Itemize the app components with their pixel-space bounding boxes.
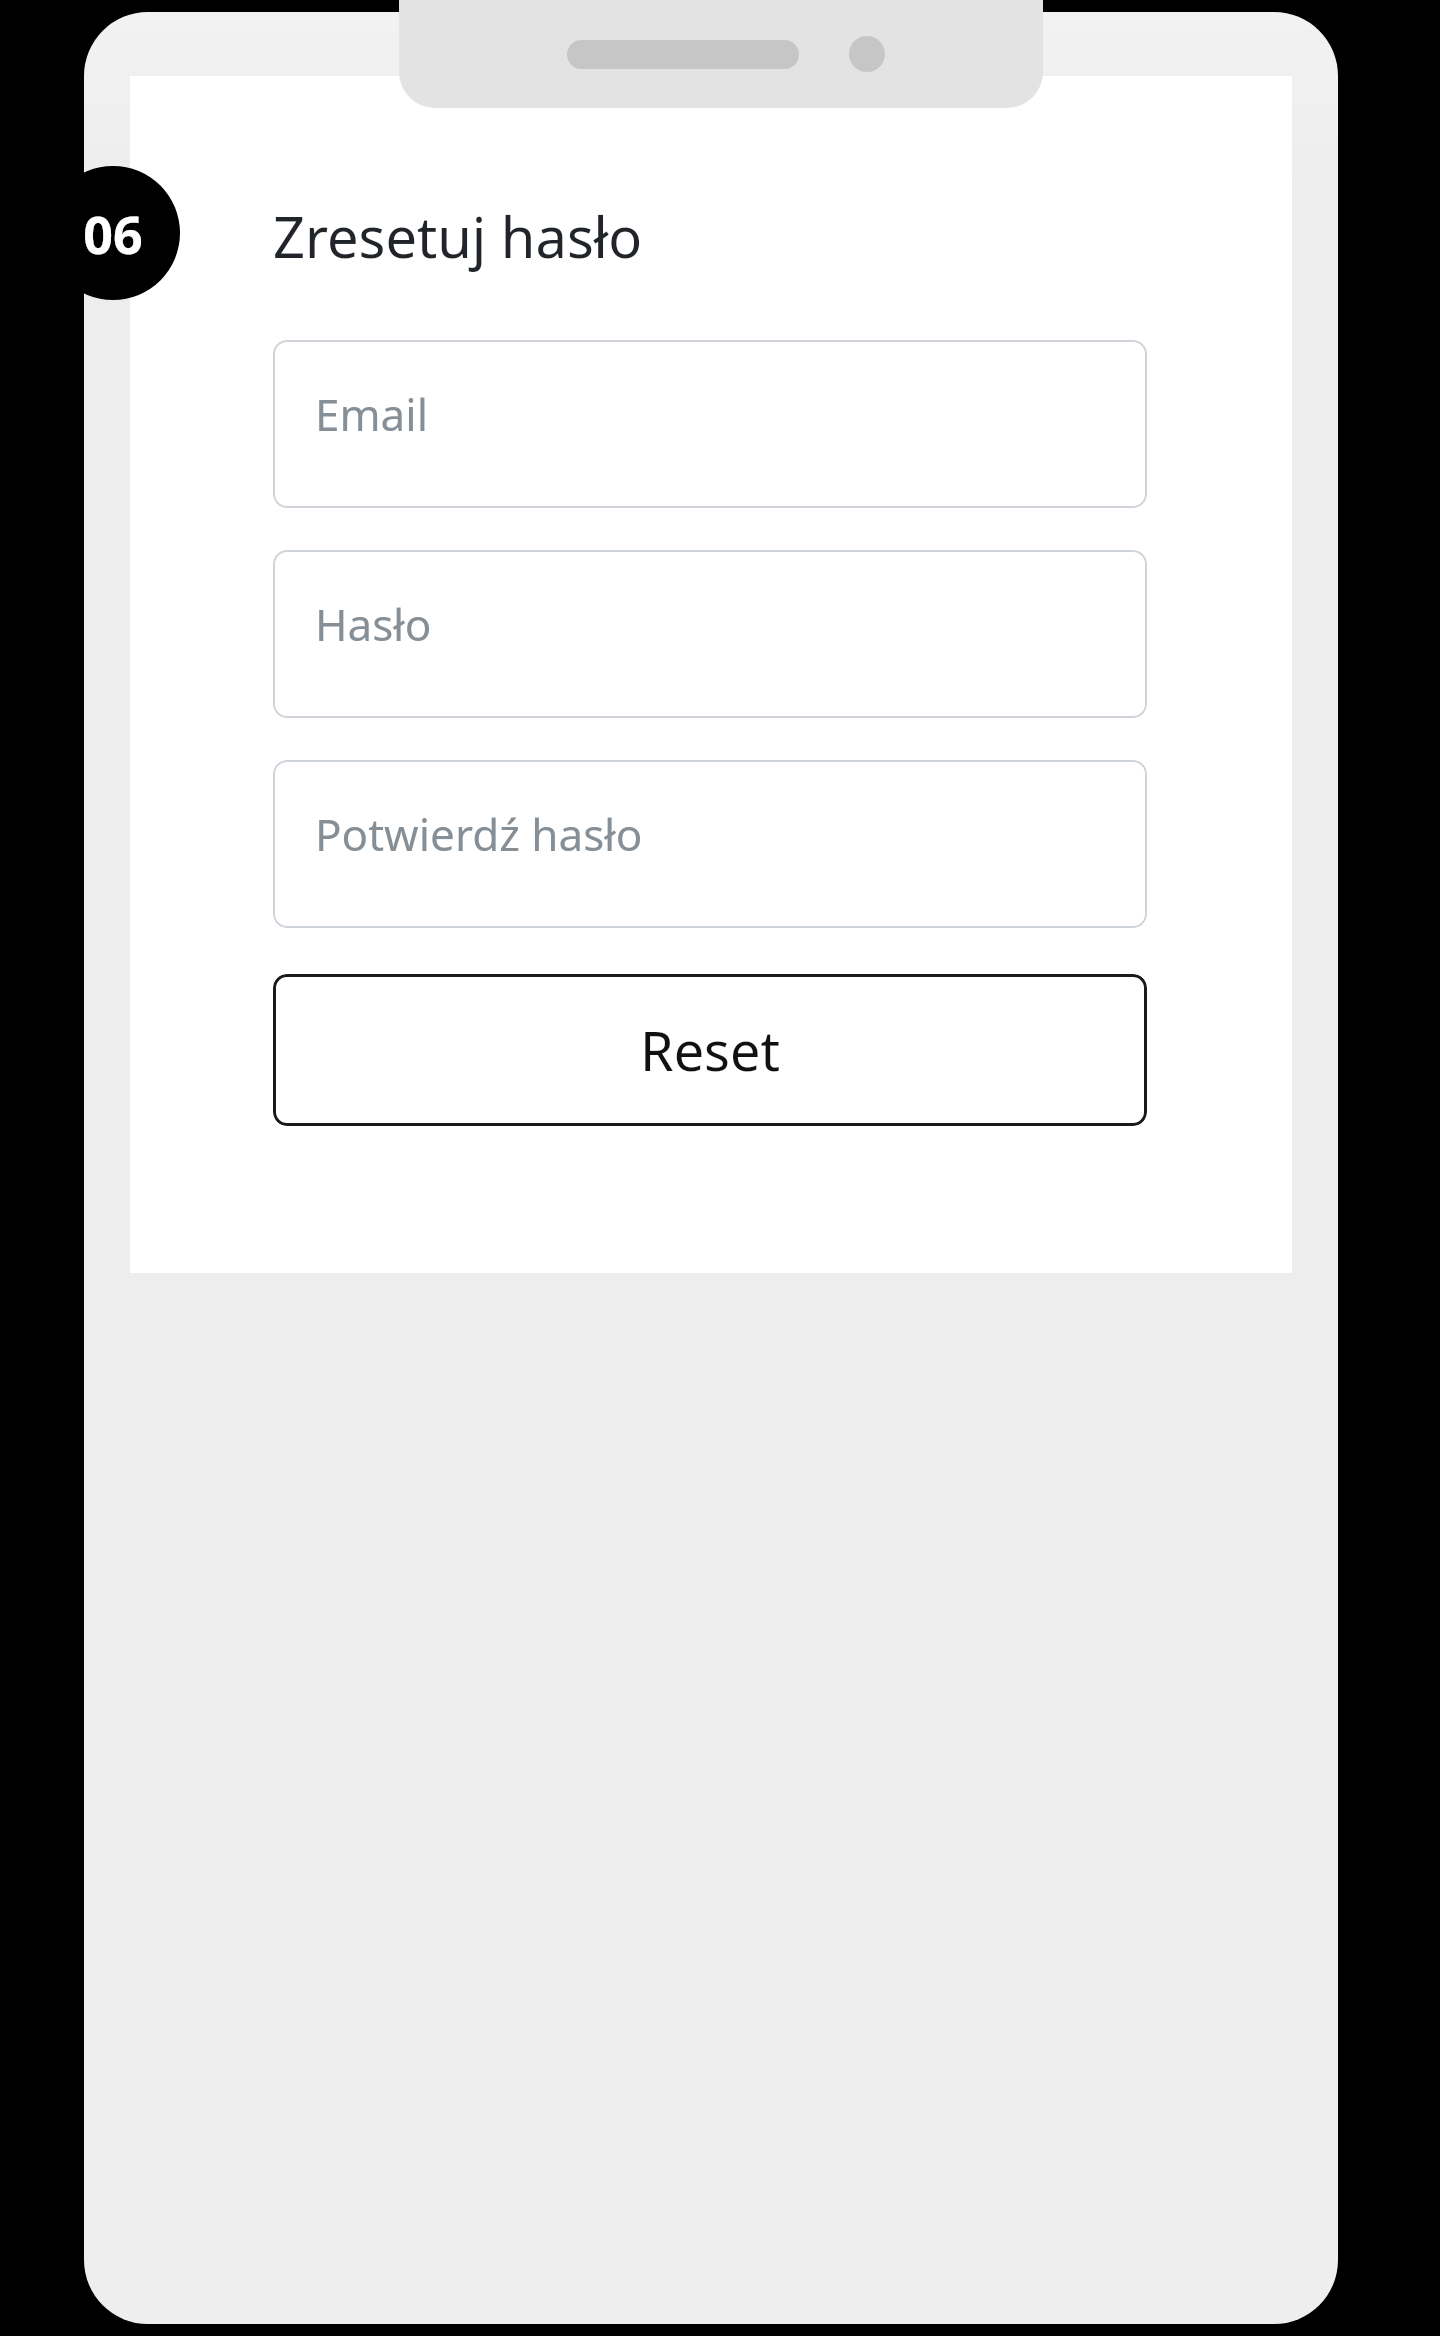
staticText: Hasło — [315, 594, 432, 654]
button[interactable]: Email — [273, 340, 1147, 508]
other: Step 06 — [46, 166, 180, 300]
staticText: Zresetuj hasło — [273, 198, 643, 274]
button[interactable]: Reset — [273, 974, 1147, 1126]
staticText: Reset — [640, 1013, 780, 1087]
button[interactable]: Potwierdź hasło — [273, 760, 1147, 928]
staticText: Email — [315, 384, 428, 444]
staticText: 06 — [83, 198, 143, 269]
staticText: Potwierdź hasło — [315, 804, 643, 864]
button[interactable]: Hasło — [273, 550, 1147, 718]
